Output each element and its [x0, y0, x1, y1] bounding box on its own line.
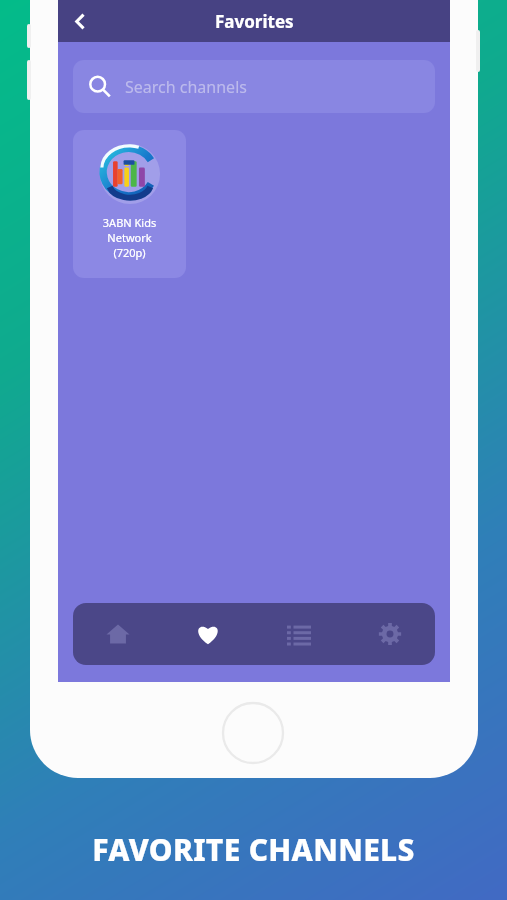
button[interactable]: Channel list: [253, 603, 344, 665]
staticText: FAVORITE CHANNELS: [92, 829, 415, 870]
staticText: Search channels: [125, 76, 247, 98]
button[interactable]: Settings: [344, 603, 435, 665]
button[interactable]: Back: [58, 0, 102, 42]
button[interactable]: 3ABN Kids Network (720p): [73, 130, 186, 278]
staticText: Favorites: [215, 10, 294, 33]
staticText: 3ABN Kids Network (720p): [73, 215, 186, 260]
button[interactable]: Favorites: [163, 603, 253, 665]
other: Search: [88, 75, 111, 98]
button[interactable]: Search: [73, 60, 435, 113]
button[interactable]: Home: [73, 603, 163, 665]
